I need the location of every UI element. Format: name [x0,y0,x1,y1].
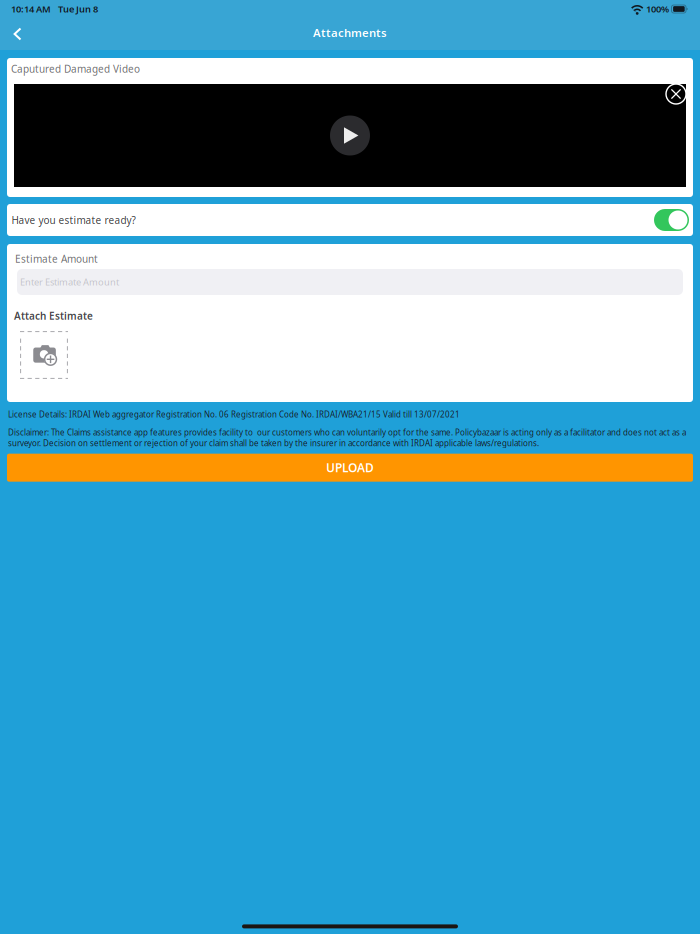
staticText: Disclaimer: The Claims assistance app fe… [8,427,686,449]
button[interactable]: Attach estimate photo [20,331,68,379]
button[interactable]: UPLOAD [7,454,693,482]
staticText: Enter Estimate Amount [20,276,119,288]
staticText: UPLOAD [326,459,374,476]
staticText: Attach Estimate [14,309,93,323]
staticText: Tue Jun 8 [58,3,98,15]
button[interactable]: Have you estimate ready [654,209,689,231]
button[interactable]: Remove video [665,83,687,105]
button[interactable]: Back [0,19,31,48]
staticText: 10:14 AM [11,3,51,15]
button[interactable]: Play video [330,115,370,155]
staticText: Attachments [313,25,387,40]
staticText: Have you estimate ready? [11,213,135,227]
staticText: Estimate Amount [15,252,98,266]
staticText: 100% [646,3,669,15]
staticText: Caputured Damaged Video [11,62,140,76]
button[interactable]: Enter Estimate Amount [17,269,683,295]
staticText: License Details: IRDAI Web aggregator Re… [8,409,460,420]
